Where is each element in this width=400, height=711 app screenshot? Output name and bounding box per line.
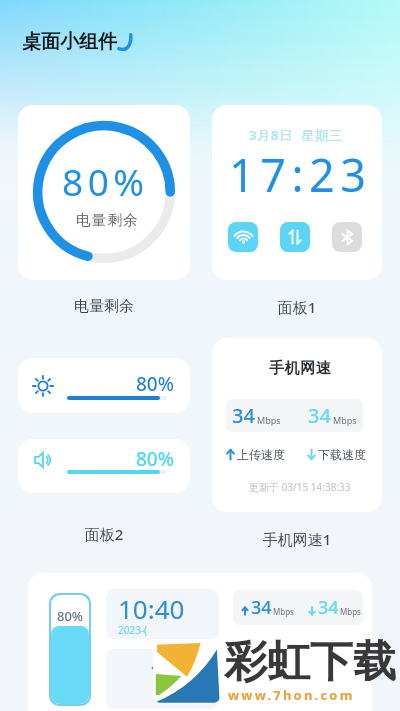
staticText: 更新于 03/15 14:38:33 — [249, 480, 351, 494]
staticText: 34 — [318, 595, 339, 620]
button[interactable]: Bluetooth — [332, 222, 362, 252]
staticText: 电量剩余 — [76, 211, 139, 229]
staticText: 上传速度 — [237, 447, 285, 462]
staticText: www.7hon.com — [228, 686, 355, 704]
button[interactable]: 手机网速 — [212, 338, 382, 512]
staticText: 手机网速 — [269, 359, 332, 378]
staticText: 80% — [57, 607, 83, 625]
button[interactable]: 3月8日 星期三 — [212, 105, 382, 280]
staticText: 彩虹下载 — [224, 635, 396, 689]
staticText: 桌面小组件 — [22, 30, 117, 54]
staticText: 10:40 — [118, 591, 185, 626]
staticText: 80% — [136, 371, 174, 397]
button[interactable]: Mobile data — [280, 222, 310, 252]
staticText: 面板1 — [212, 297, 382, 317]
staticText: 2023-( — [118, 623, 148, 637]
staticText: Mbps — [340, 606, 361, 617]
staticText: Mbps — [333, 414, 357, 426]
staticText: 3月8日 星期三 — [249, 126, 343, 144]
staticText: 80% — [136, 446, 174, 472]
staticText: Mbps — [273, 606, 294, 617]
staticText: 手机网速1 — [212, 529, 382, 549]
staticText: 下载速度 — [318, 447, 366, 462]
staticText: 17:23 — [229, 144, 372, 205]
staticText: Mbps — [257, 414, 281, 426]
staticText: 34 — [308, 402, 331, 429]
staticText: 80% — [62, 156, 149, 206]
staticText: 34 — [232, 402, 255, 429]
button[interactable]: 80% — [18, 439, 190, 493]
button[interactable]: 80% — [28, 573, 372, 711]
staticText: 电量剩余 — [18, 297, 190, 316]
button[interactable]: 80% — [18, 358, 190, 413]
button[interactable]: 80% — [18, 105, 190, 280]
staticText: 面板2 — [18, 524, 190, 544]
button[interactable]: Wi-Fi — [228, 222, 258, 252]
staticText: 34 — [251, 595, 272, 620]
